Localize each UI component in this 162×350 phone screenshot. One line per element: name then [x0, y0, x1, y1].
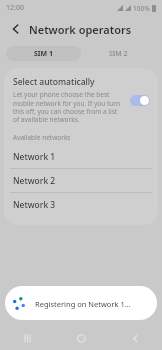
button[interactable]: SIM 2	[81, 46, 156, 61]
button[interactable]: Network 2	[4, 169, 158, 192]
staticText: Network 2	[13, 175, 56, 187]
staticText: Let your phone choose the best mobile ne…	[13, 90, 124, 124]
staticText: 12:00	[6, 3, 24, 13]
staticText: SIM 1	[34, 49, 54, 59]
button[interactable]: Back	[8, 21, 24, 37]
staticText: Network 1	[13, 151, 56, 163]
staticText: Network 3	[13, 199, 56, 211]
button[interactable]: Select automatically	[4, 68, 158, 132]
button[interactable]: Registering on Network 1…	[5, 286, 157, 320]
staticText: SIM 2	[109, 49, 128, 59]
staticText: Network operators	[29, 22, 132, 37]
staticText: Registering on Network 1…	[35, 299, 131, 309]
button[interactable]: SIM 1	[6, 46, 81, 61]
staticText: Available networks	[13, 133, 71, 142]
button[interactable]: Recents	[0, 326, 54, 350]
staticText: Select automatically	[13, 76, 95, 88]
button[interactable]: Select automatically toggle	[130, 95, 150, 106]
button[interactable]: Network 1	[4, 145, 158, 168]
button[interactable]: Home	[54, 326, 108, 350]
staticText: 100%	[133, 4, 150, 13]
button[interactable]: Network 3	[4, 193, 158, 216]
